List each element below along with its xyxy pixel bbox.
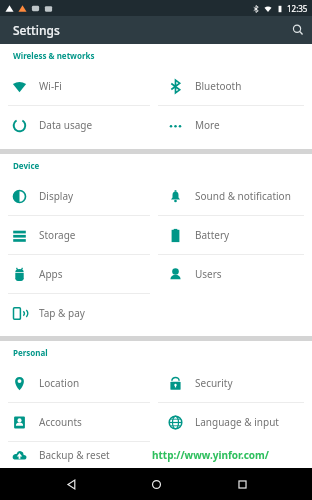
button[interactable]: Battery [156,216,312,254]
staticText: Storage [39,228,76,242]
button[interactable]: Users [156,255,312,293]
button[interactable]: Wi-Fi [0,67,156,105]
button[interactable]: Language & input [156,403,312,441]
staticText: Sound & notification [195,189,291,203]
button[interactable]: Home [141,469,171,499]
staticText: Personal [13,347,48,358]
button[interactable]: Security [156,364,312,402]
button[interactable]: Backup & reset [0,442,156,468]
staticText: Tap & pay [39,306,85,320]
staticText: More [195,118,220,132]
staticText: Battery [195,228,230,242]
staticText: Location [39,376,80,390]
staticText: Users [195,267,222,281]
staticText: Wireless & networks [13,50,95,61]
staticText: Wi-Fi [39,79,62,93]
staticText: Bluetooth [195,79,242,93]
staticText: Display [39,189,74,203]
button[interactable]: Data usage [0,106,156,144]
staticText: http://www.yinfor.com/ [152,448,270,462]
staticText: Accounts [39,415,82,429]
button[interactable]: Apps [0,255,156,293]
button[interactable]: Accounts [0,403,156,441]
staticText: Security [195,376,233,390]
button[interactable]: Recent apps [227,469,257,499]
button[interactable]: Display [0,177,156,215]
button[interactable]: Location [0,364,156,402]
button[interactable]: Back [56,469,86,499]
staticText: 12:35 [287,3,308,14]
staticText: Device [13,160,40,171]
button[interactable]: Search [284,16,312,44]
staticText: Settings [13,22,60,38]
button[interactable]: Storage [0,216,156,254]
button[interactable]: More [156,106,312,144]
button[interactable]: Sound & notification [156,177,312,215]
button[interactable]: Bluetooth [156,67,312,105]
button[interactable]: Tap & pay [0,294,156,332]
staticText: Backup & reset [39,448,110,462]
staticText: Language & input [195,415,279,429]
staticText: Data usage [39,118,93,132]
staticText: Apps [39,267,63,281]
